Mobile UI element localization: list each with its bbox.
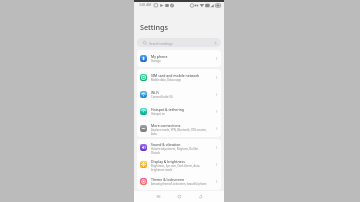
- button[interactable]: Back: [193, 191, 207, 202]
- button[interactable]: My phone: [137, 50, 221, 67]
- staticText: Volume adjustment, Ringtone, Do Not Dist…: [151, 147, 207, 154]
- staticText: Mobile data, Data usage: [151, 78, 182, 82]
- staticText: Search settings: [149, 41, 173, 45]
- staticText: Brightness, Eye care, Dark theme, Auto-b…: [151, 164, 207, 171]
- staticText: Hotspot & tethering: [151, 107, 184, 112]
- button[interactable]: Theme & lockscreen: [137, 173, 221, 190]
- staticText: Airplane mode, VPN, Bluetooth, OTG sessi…: [151, 128, 207, 135]
- button[interactable]: Sound & vibration: [137, 139, 221, 156]
- staticText: Hotspot on: [151, 112, 165, 116]
- staticText: SIM card and mobile network: [151, 73, 200, 78]
- staticText: ConnectGuide 5G: [151, 95, 173, 99]
- button[interactable]: More connections: [137, 120, 221, 137]
- staticText: 3:45 AM: [139, 3, 152, 7]
- button[interactable]: Recent apps: [151, 191, 165, 202]
- button[interactable]: Hotspot & tethering: [137, 103, 221, 120]
- staticText: Display & brightness: [151, 159, 185, 164]
- staticText: Storage: [151, 59, 161, 63]
- button[interactable]: Display & brightness: [137, 156, 221, 173]
- button[interactable]: Home: [172, 191, 186, 202]
- staticText: My phone: [151, 54, 168, 59]
- button[interactable]: SIM card and mobile network: [137, 69, 221, 86]
- button[interactable]: Wi-Fi: [137, 86, 221, 103]
- button[interactable]: Search settings: [137, 38, 221, 47]
- staticText: Amazing theme/Lockscreen, beautiful phon…: [151, 182, 207, 186]
- staticText: More connections: [151, 123, 181, 128]
- staticText: Wi-Fi: [151, 90, 160, 95]
- staticText: Sound & vibration: [151, 142, 181, 147]
- staticText: Theme & lockscreen: [151, 177, 185, 182]
- staticText: Settings: [140, 22, 168, 32]
